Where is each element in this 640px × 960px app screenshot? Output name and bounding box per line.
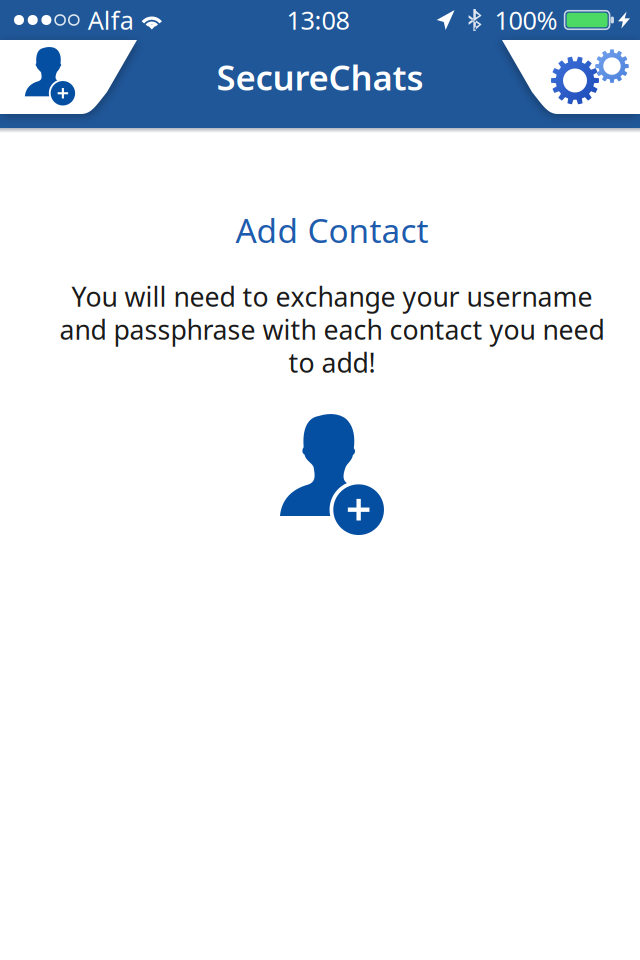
staticText: Add Contact xyxy=(235,208,428,252)
button[interactable]: Add Contact xyxy=(0,40,137,114)
staticText: to add! xyxy=(288,345,375,380)
staticText: 100% xyxy=(495,3,558,37)
button[interactable]: Settings xyxy=(502,40,640,114)
staticText: Alfa xyxy=(88,3,134,37)
staticText: and passphrase with each contact you nee… xyxy=(59,312,604,347)
staticText: SecureChats xyxy=(216,54,423,100)
staticText: 13:08 xyxy=(286,3,349,37)
staticText: You will need to exchange your username xyxy=(71,279,592,314)
